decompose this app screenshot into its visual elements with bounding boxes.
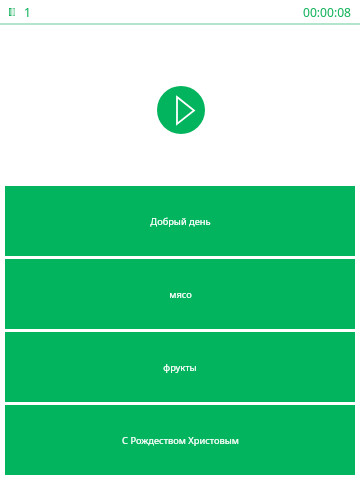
staticText: фрукты (163, 361, 197, 374)
staticText: С Рождеством Христовым (122, 434, 239, 447)
button[interactable]: С Рождеством Христовым (5, 405, 355, 475)
button[interactable]: фрукты (5, 332, 355, 402)
button[interactable]: Play (157, 86, 205, 134)
button[interactable]: Phrase book, 1 page (9, 4, 31, 20)
staticText: мясо (169, 288, 192, 301)
staticText: 1 (24, 4, 31, 20)
button[interactable]: Добрый день (5, 186, 355, 256)
staticText: 00:00:08 (303, 4, 351, 20)
button[interactable]: мясо (5, 259, 355, 329)
staticText: Добрый день (150, 215, 211, 228)
